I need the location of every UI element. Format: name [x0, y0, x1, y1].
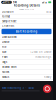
staticText: New Recording 3 · 00:00: [2, 86, 34, 90]
staticText: Duration: [2, 10, 14, 13]
button[interactable]: Notes: [0, 70, 53, 75]
button[interactable]: Channels: [0, 24, 53, 28]
button[interactable]: Duration: [0, 10, 53, 14]
staticText: 00:32: [46, 10, 51, 13]
button[interactable]: Sample Rate: [0, 19, 53, 24]
button[interactable]: Date Added: [0, 35, 53, 40]
button[interactable]: Size: [0, 50, 53, 55]
button[interactable]: Back to Memos: [1, 1, 12, 4]
button[interactable]: Shared With: [0, 65, 53, 70]
button[interactable]: Start Recording: [1, 29, 51, 34]
button[interactable]: Tags: [0, 60, 53, 65]
staticText: Today 9:41 AM: [19, 7, 34, 11]
staticText: 9:41: [13, 1, 17, 4]
staticText: Device: [2, 40, 9, 44]
staticText: ▲: [45, 1, 47, 3]
staticText: Path: [2, 55, 8, 59]
button[interactable]: Record: [43, 85, 51, 93]
staticText: ◀: [2, 1, 3, 3]
staticText: File: [2, 45, 6, 49]
staticText: Format: [2, 15, 10, 18]
staticText: Memos: [3, 1, 11, 4]
button[interactable]: Format: [0, 14, 53, 19]
staticText: Channels: [2, 24, 14, 28]
staticText: Shared With: [2, 65, 17, 69]
staticText: Size: [2, 50, 6, 54]
staticText: Date Added: [2, 35, 17, 39]
button[interactable]: Path: [0, 55, 53, 60]
staticText: Notes: [2, 70, 9, 74]
staticText: Start Recording: [15, 30, 37, 33]
staticText: Sample Rate: [2, 19, 16, 23]
button[interactable]: Device: [0, 40, 53, 45]
button[interactable]: File: [0, 45, 53, 50]
staticText: 1.2 MB on Device: [30, 50, 51, 54]
staticText: Ready: [44, 75, 51, 79]
staticText: Tags: [2, 60, 7, 64]
staticText: Status: [2, 75, 9, 79]
button[interactable]: New Recording 3 · 00:00: [2, 86, 34, 90]
staticText: /Recordings: [35, 55, 51, 59]
button[interactable]: Status: [0, 75, 53, 80]
staticText: Recording Details: [13, 3, 39, 7]
